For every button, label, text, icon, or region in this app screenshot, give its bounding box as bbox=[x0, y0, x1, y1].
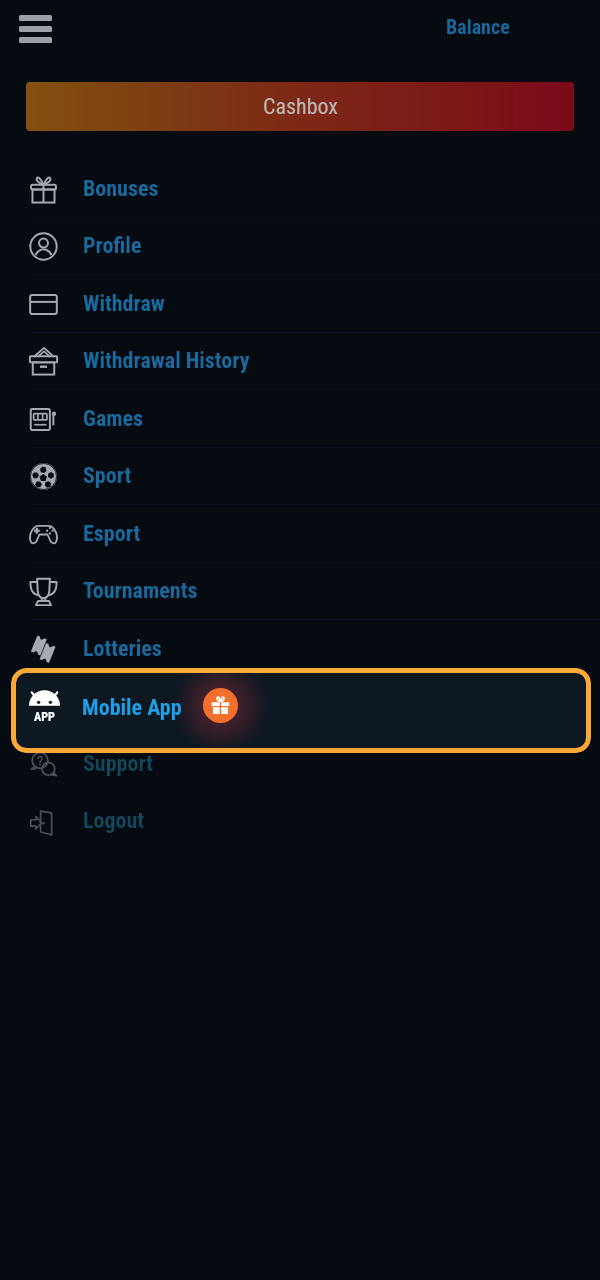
button[interactable]: Open navigation menu bbox=[6, 1, 64, 57]
staticText: Sport bbox=[83, 463, 132, 489]
button[interactable]: Support bbox=[0, 735, 600, 793]
button[interactable]: Withdraw bbox=[0, 275, 600, 333]
staticText: Lotteries bbox=[83, 636, 162, 662]
staticText: Bonuses bbox=[83, 176, 159, 202]
staticText: Withdrawal History bbox=[83, 348, 250, 374]
staticText: Tournaments bbox=[83, 578, 198, 604]
staticText: Profile bbox=[83, 233, 142, 259]
staticText: APP bbox=[34, 710, 55, 724]
button[interactable]: Games bbox=[0, 390, 600, 448]
button[interactable]: Lotteries bbox=[0, 620, 600, 678]
button[interactable]: Logout bbox=[0, 792, 600, 850]
button[interactable]: Tournaments bbox=[0, 562, 600, 620]
button[interactable]: Esport bbox=[0, 505, 600, 563]
staticText: Cashbox bbox=[263, 94, 338, 120]
button[interactable]: Balance bbox=[446, 15, 510, 38]
staticText: Esport bbox=[83, 521, 141, 547]
button[interactable]: Bonuses bbox=[0, 160, 600, 218]
staticText: Balance bbox=[446, 15, 510, 38]
staticText: Mobile App bbox=[82, 695, 182, 721]
button[interactable]: Withdrawal History bbox=[0, 332, 600, 390]
button[interactable]: Profile bbox=[0, 217, 600, 275]
staticText: Logout bbox=[83, 808, 145, 834]
button[interactable]: Sport bbox=[0, 447, 600, 505]
button[interactable]: APP bbox=[11, 668, 591, 753]
staticText: Support bbox=[83, 751, 153, 777]
staticText: Withdraw bbox=[83, 291, 165, 317]
staticText: Games bbox=[83, 406, 144, 432]
button[interactable]: Cashbox bbox=[26, 82, 574, 131]
